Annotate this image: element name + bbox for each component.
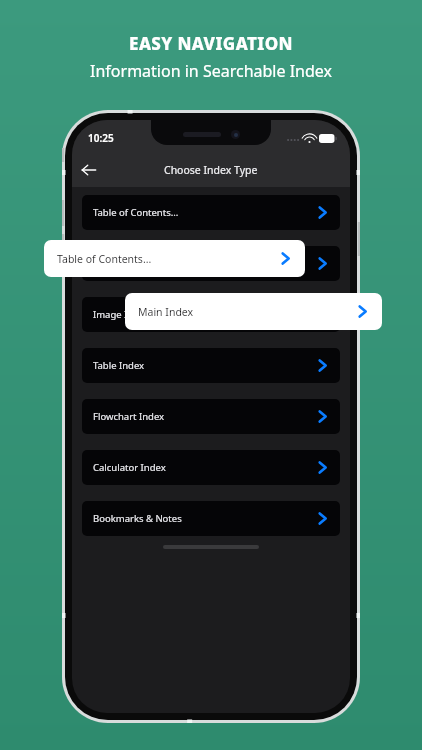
button[interactable]: Calculator Index bbox=[82, 450, 340, 485]
staticText: 10:25 bbox=[88, 131, 114, 145]
staticText: EASY NAVIGATION bbox=[129, 32, 293, 55]
staticText: Information in Searchable Index bbox=[90, 60, 332, 82]
button[interactable]: Table of Contents... bbox=[82, 195, 340, 230]
button[interactable]: Chapter Index bbox=[82, 246, 340, 281]
button[interactable]: Image Index bbox=[82, 297, 340, 332]
staticText: Table of Contents... bbox=[93, 206, 179, 219]
staticText: Table Index bbox=[93, 359, 145, 372]
button[interactable]: Back bbox=[72, 153, 106, 187]
button[interactable]: Table of Contents... bbox=[44, 240, 305, 277]
staticText: Table of Contents... bbox=[57, 252, 152, 266]
staticText: Bookmarks & Notes bbox=[93, 512, 182, 525]
button[interactable]: Flowchart Index bbox=[82, 399, 340, 434]
staticText: Main Index bbox=[138, 305, 194, 319]
staticText: Choose Index Type bbox=[164, 163, 258, 177]
staticText: Image Index bbox=[93, 308, 150, 321]
button[interactable]: Table Index bbox=[82, 348, 340, 383]
staticText: Flowchart Index bbox=[93, 410, 165, 423]
button[interactable]: Bookmarks & Notes bbox=[82, 501, 340, 536]
button[interactable]: Main Index bbox=[125, 293, 382, 330]
staticText: Calculator Index bbox=[93, 461, 166, 474]
staticText: Chapter Index bbox=[93, 257, 157, 270]
